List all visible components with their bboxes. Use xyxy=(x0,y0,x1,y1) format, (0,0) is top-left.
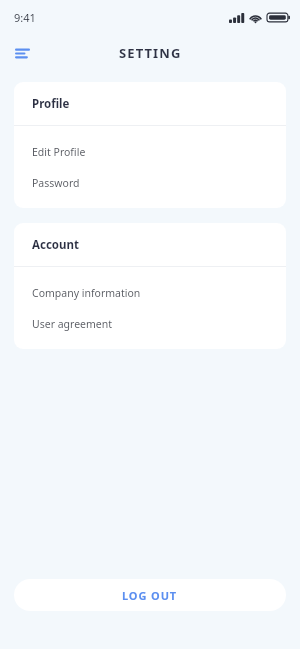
staticText: LOG OUT xyxy=(122,588,178,603)
staticText: Edit Profile xyxy=(32,145,86,159)
button[interactable]: User agreement xyxy=(14,308,286,339)
button[interactable]: Open navigation menu xyxy=(8,39,36,67)
button[interactable]: Password xyxy=(14,167,286,198)
staticText: Company information xyxy=(32,286,141,300)
staticText: Profile xyxy=(32,96,70,112)
button[interactable]: Edit Profile xyxy=(14,136,286,167)
button[interactable]: Profile xyxy=(14,82,286,125)
staticText: SETTING xyxy=(119,44,182,62)
staticText: 9:41 xyxy=(14,10,36,25)
button[interactable]: LOG OUT xyxy=(14,579,286,611)
staticText: User agreement xyxy=(32,317,113,331)
staticText: Account xyxy=(32,237,79,253)
button[interactable]: Company information xyxy=(14,277,286,308)
button[interactable]: Account xyxy=(14,223,286,266)
staticText: Password xyxy=(32,176,80,190)
